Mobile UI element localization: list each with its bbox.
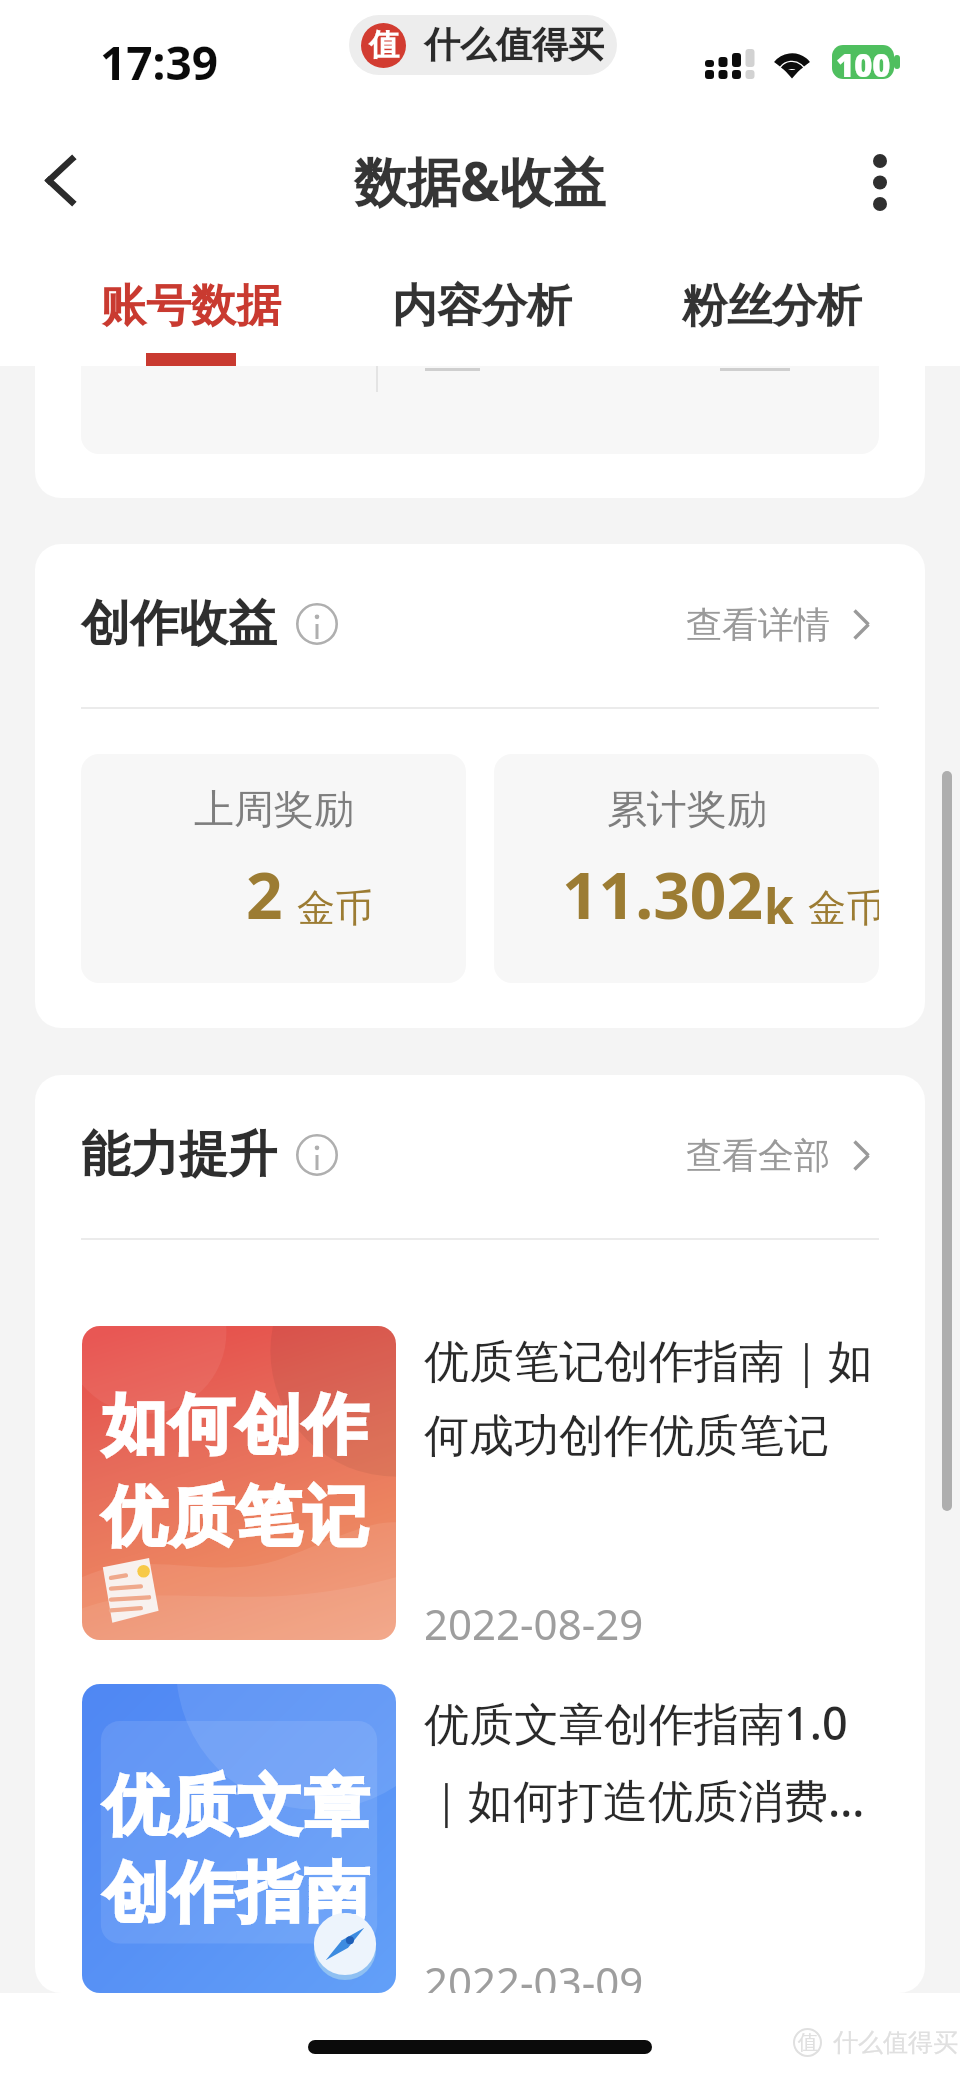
staticText: 如何创作 优质笔记 bbox=[101, 1384, 369, 1559]
button[interactable]: 内容分析 bbox=[392, 245, 572, 366]
staticText: 查看全部 bbox=[686, 1133, 830, 1178]
staticText: 粉丝分析 bbox=[682, 278, 862, 335]
staticText: 累计奖励 bbox=[607, 784, 767, 834]
staticText: 2 bbox=[246, 851, 283, 938]
staticText: 金币 bbox=[808, 884, 879, 932]
staticText: 100 bbox=[836, 45, 891, 78]
button[interactable]: 如何创作 优质笔记 bbox=[82, 1326, 885, 1640]
button[interactable]: Info about 创作收益 bbox=[296, 603, 338, 645]
staticText: 17:39 bbox=[100, 31, 219, 94]
staticText: k bbox=[764, 873, 794, 938]
staticText: 查看详情 bbox=[686, 602, 830, 647]
button[interactable]: 优质文章 创作指南 bbox=[82, 1684, 885, 1993]
staticText: 优质文章创作指南1.0 ｜如何打造优质消费… bbox=[424, 1692, 865, 1830]
staticText: 优质文章 创作指南 bbox=[102, 1765, 370, 1934]
staticText: 内容分析 bbox=[392, 278, 572, 335]
button[interactable]: 查看详情 bbox=[686, 602, 870, 647]
staticText: 优质笔记创作指南｜如 何成功创作优质笔记 bbox=[424, 1334, 874, 1465]
staticText: 能力提升 bbox=[81, 1124, 277, 1186]
staticText: 账号数据 bbox=[101, 278, 281, 335]
staticText: 值 bbox=[369, 26, 399, 64]
button[interactable]: 账号数据 bbox=[101, 245, 281, 366]
button[interactable]: Info about 能力提升 bbox=[296, 1134, 338, 1176]
staticText: 数据&收益 bbox=[354, 144, 606, 216]
button[interactable]: 上周奖励 bbox=[81, 754, 466, 983]
button[interactable]: 查看全部 bbox=[686, 1133, 870, 1178]
staticText: 什么值得买 bbox=[424, 22, 604, 67]
button[interactable]: Back bbox=[14, 134, 106, 226]
button[interactable]: More options bbox=[834, 136, 926, 228]
staticText: 值 bbox=[798, 2030, 818, 2055]
button[interactable]: 累计奖励 bbox=[494, 754, 879, 983]
staticText: 创作收益 bbox=[81, 593, 277, 655]
staticText: 上周奖励 bbox=[194, 784, 354, 834]
staticText: 2022-03-09 bbox=[424, 1953, 644, 1993]
staticText: 什么值得买 bbox=[833, 2027, 958, 2058]
staticText: 金币 bbox=[297, 884, 373, 932]
staticText: 2022-08-29 bbox=[424, 1595, 644, 1652]
staticText: 11.302 bbox=[562, 851, 764, 938]
button[interactable]: 粉丝分析 bbox=[682, 245, 862, 366]
